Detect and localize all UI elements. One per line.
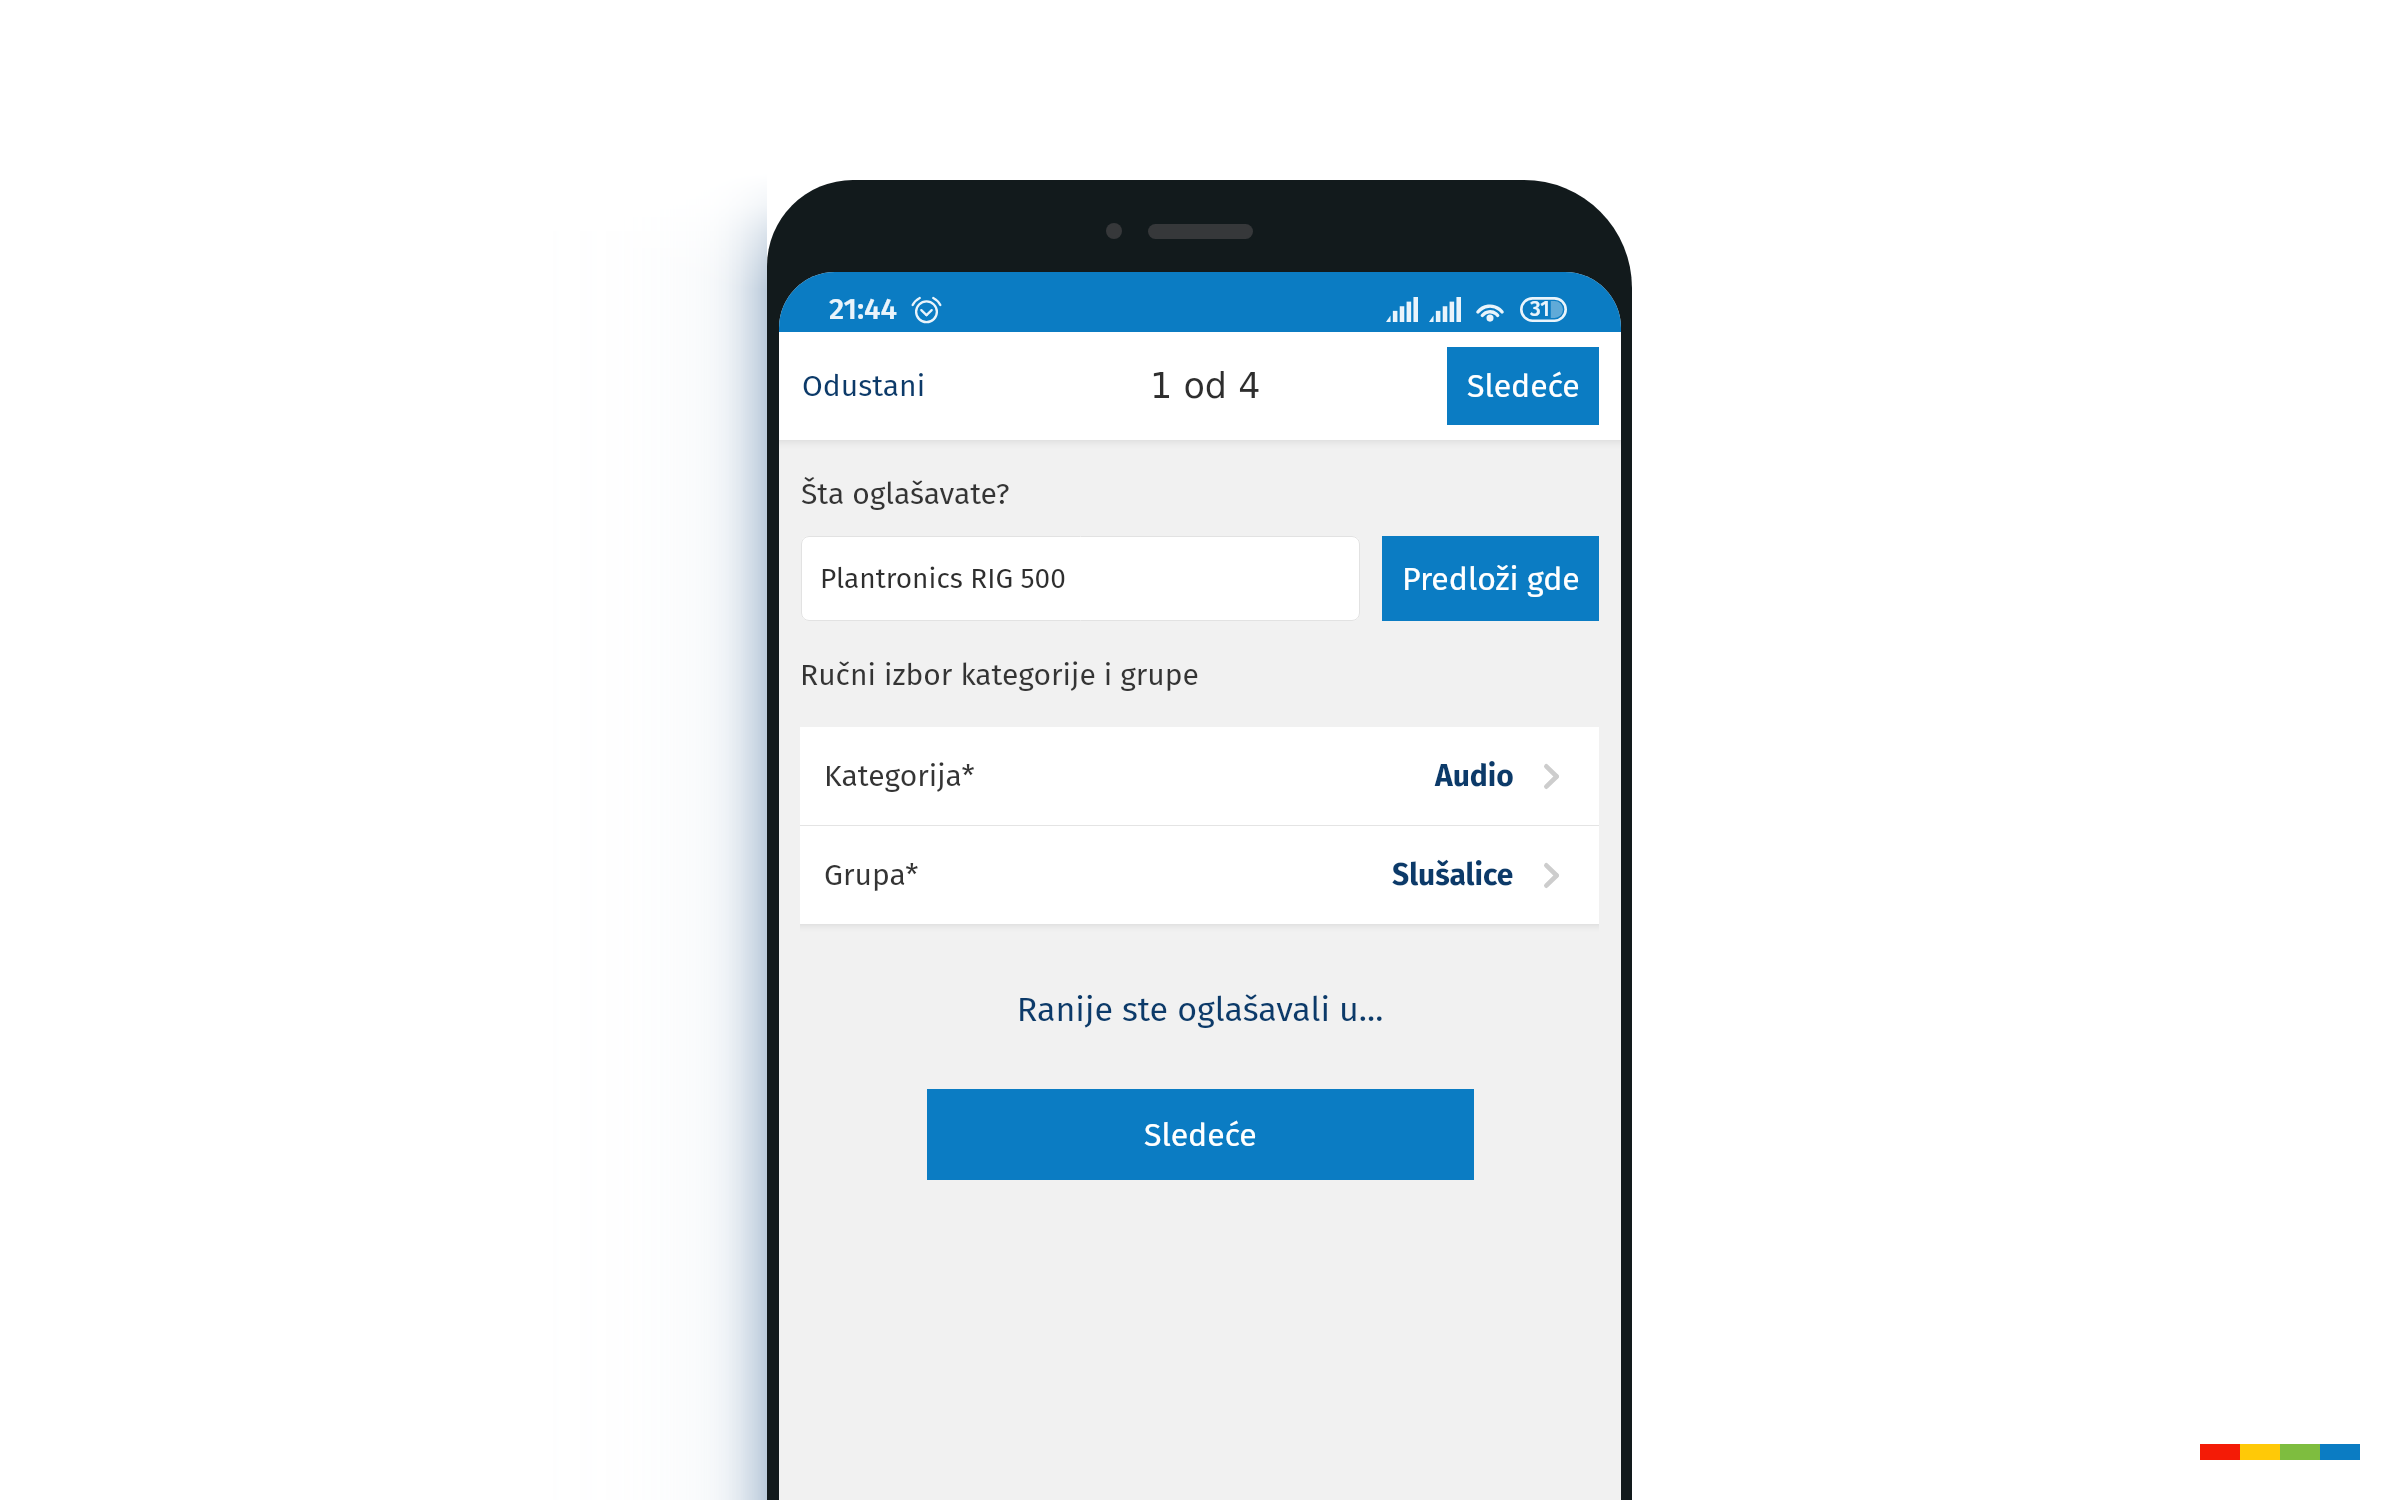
other: Mobile signal [1429, 297, 1461, 322]
button[interactable]: Sledeće [1447, 347, 1599, 425]
staticText: 21:44 [829, 291, 898, 327]
staticText: 1 od 4 [1150, 366, 1261, 407]
staticText: Odustani [802, 368, 926, 404]
staticText: Grupa* [824, 857, 919, 893]
staticText: Sledeće [1467, 367, 1580, 405]
staticText: Predloži gde [1402, 560, 1580, 598]
staticText: Šta oglašavate? [801, 476, 1010, 512]
other: Wi-Fi [1474, 297, 1506, 321]
staticText: Sledeće [1144, 1116, 1257, 1154]
button[interactable]: Kategorija* [800, 727, 1599, 825]
other: Battery 31 percent [1520, 297, 1567, 322]
staticText: Slušalice [1392, 857, 1514, 893]
button[interactable]: Sledeće [927, 1089, 1474, 1180]
button[interactable]: Ranije ste oglašavali u... [779, 989, 1621, 1030]
button[interactable]: Grupa* [800, 826, 1599, 924]
button[interactable]: Predloži gde [1382, 536, 1599, 621]
button[interactable]: Plantronics RIG 500 [801, 536, 1360, 621]
other: Mobile signal [1386, 297, 1418, 322]
staticText: Ručni izbor kategorije i grupe [800, 657, 1199, 693]
button[interactable]: Odustani [779, 352, 946, 420]
staticText: Plantronics RIG 500 [820, 562, 1066, 596]
staticText: Kategorija* [824, 758, 975, 794]
staticText: Audio [1435, 758, 1514, 794]
other: Alarm set [913, 295, 940, 323]
staticText: 31 [1530, 296, 1550, 321]
